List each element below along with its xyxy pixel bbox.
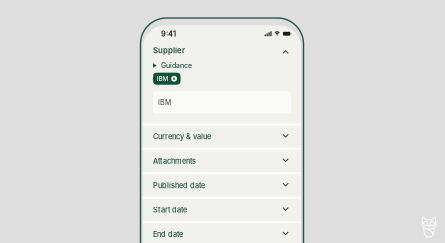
button[interactable]: Guidance xyxy=(143,59,301,72)
staticText: Supplier xyxy=(153,46,185,55)
staticText: End date xyxy=(153,230,183,239)
staticText: IBM xyxy=(157,75,169,82)
staticText: IBM xyxy=(158,98,171,107)
staticText: Guidance xyxy=(161,61,192,70)
staticText: Published date xyxy=(153,181,205,190)
button[interactable]: Currency & value xyxy=(143,126,301,148)
button[interactable]: Attachments xyxy=(143,150,301,172)
button[interactable]: Published date xyxy=(143,175,301,196)
button[interactable]: End date xyxy=(143,223,301,243)
staticText: Start date xyxy=(153,205,187,214)
button[interactable]: Start date xyxy=(143,199,301,221)
staticText: Currency & value xyxy=(153,132,211,141)
button[interactable]: IBM xyxy=(153,73,181,85)
staticText: Attachments xyxy=(153,157,196,166)
staticText: 9:41 xyxy=(161,29,176,38)
button[interactable]: Supplier xyxy=(143,42,301,59)
